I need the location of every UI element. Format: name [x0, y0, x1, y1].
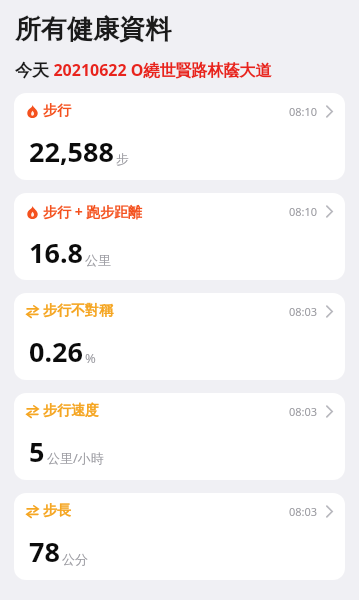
staticText: 公里/小時: [47, 449, 104, 467]
staticText: 步行速度: [43, 402, 99, 420]
other: Walking metric: [26, 405, 39, 418]
button[interactable]: Activity: [14, 193, 345, 280]
staticText: 步行: [43, 102, 71, 120]
staticText: 08:03: [289, 504, 318, 519]
staticText: 公里: [85, 252, 111, 268]
other: Activity: [26, 105, 39, 118]
staticText: 公分: [62, 551, 88, 567]
staticText: 步行不對稱: [43, 302, 113, 320]
staticText: 08:03: [289, 404, 318, 419]
staticText: 所有健康資料: [15, 13, 171, 46]
button[interactable]: Walking metric: [14, 393, 345, 480]
staticText: 78: [29, 533, 60, 570]
staticText: 08:03: [289, 304, 318, 319]
staticText: 22,588: [29, 133, 114, 170]
staticText: 08:10: [289, 204, 318, 219]
staticText: 今天 20210622 O繞世賢路林蔭大道: [15, 58, 272, 81]
staticText: 步: [116, 151, 129, 167]
staticText: 5: [29, 433, 45, 470]
other: Activity: [26, 206, 39, 219]
button[interactable]: Activity: [14, 93, 345, 180]
button[interactable]: Walking metric: [14, 293, 345, 380]
staticText: %: [85, 349, 96, 367]
other: Walking metric: [26, 305, 39, 318]
staticText: 步長: [43, 502, 71, 520]
staticText: 步行 + 跑步距離: [43, 202, 143, 221]
staticText: 16.8: [29, 234, 83, 271]
staticText: 08:10: [289, 104, 318, 119]
staticText: 0.26: [29, 333, 83, 370]
button[interactable]: Walking metric: [14, 493, 345, 580]
other: Walking metric: [26, 505, 39, 518]
